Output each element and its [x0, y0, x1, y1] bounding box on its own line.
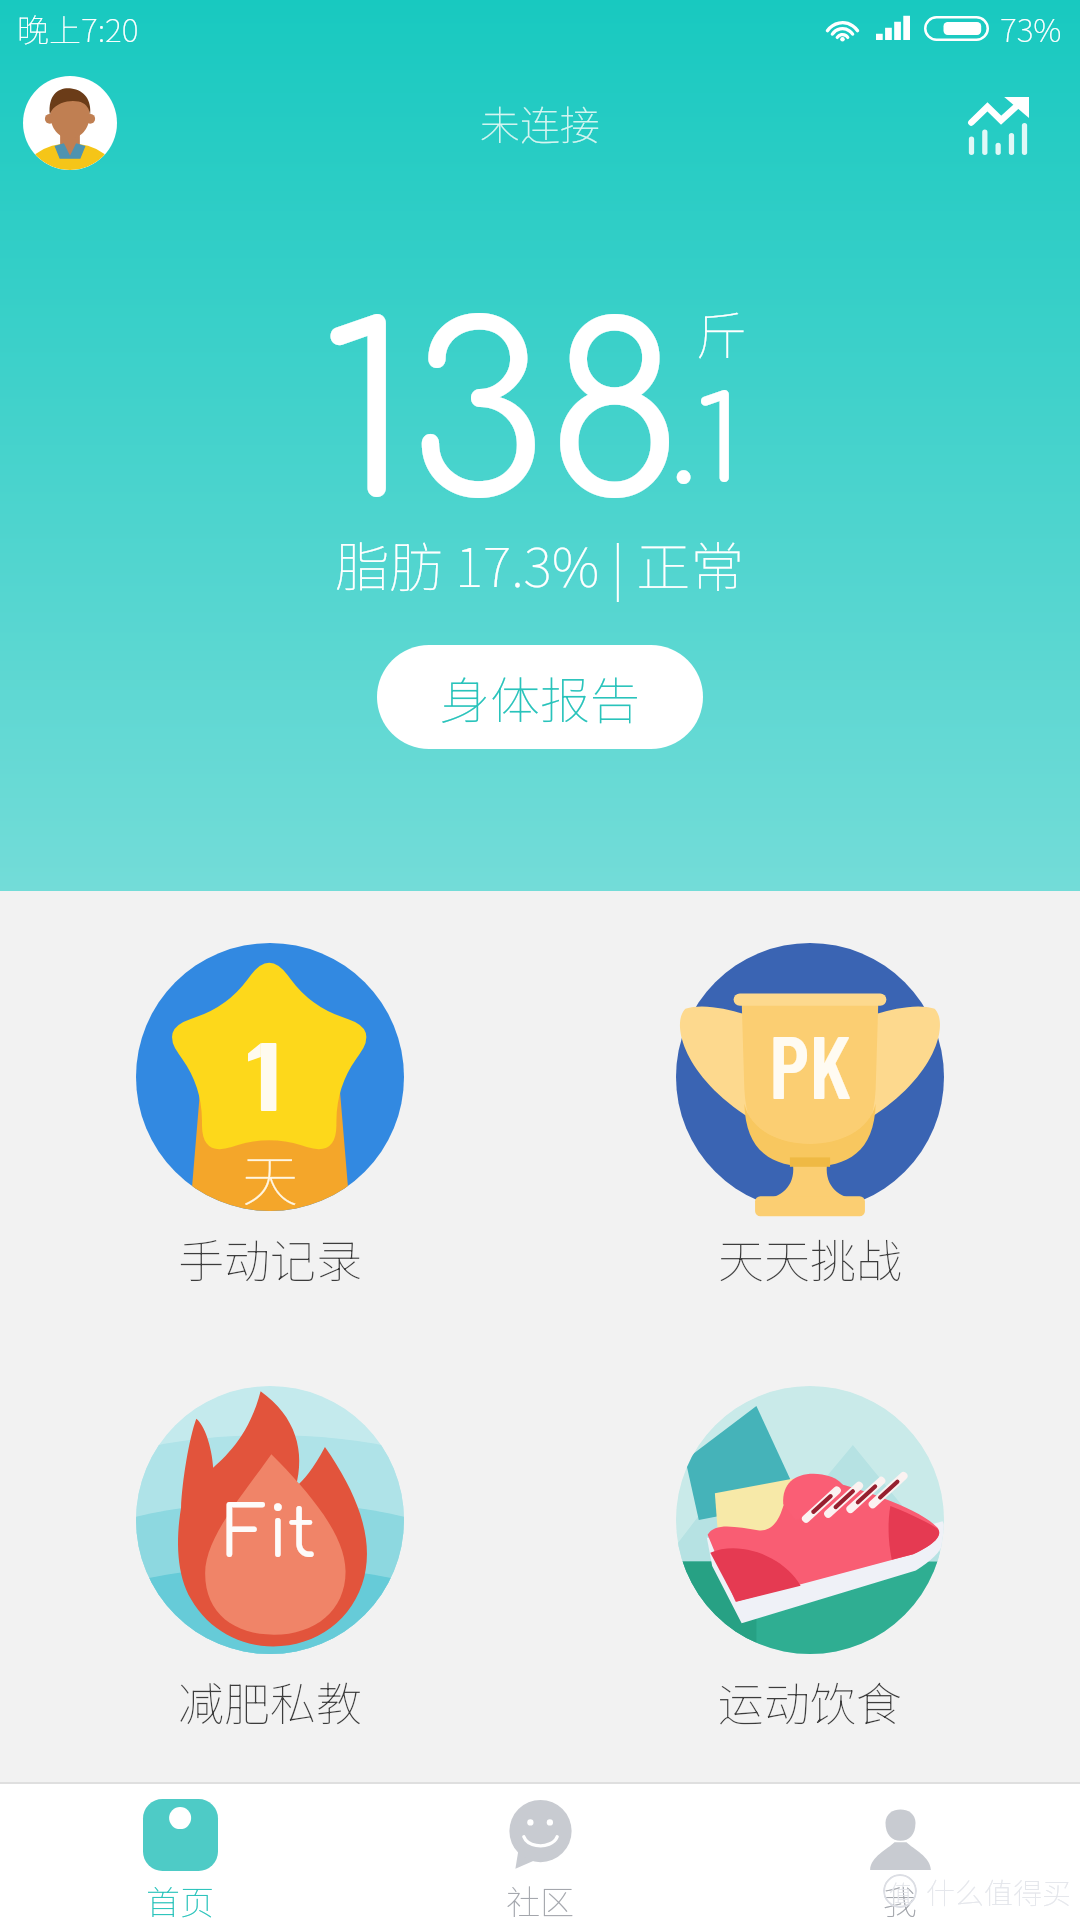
staticText: 手动记录: [178, 1225, 362, 1292]
button[interactable]: PK: [540, 943, 1080, 1292]
staticText: 斤: [695, 295, 748, 370]
button[interactable]: 天: [0, 943, 540, 1292]
button[interactable]: Trends: [950, 78, 1046, 174]
staticText: 减肥私教: [178, 1668, 362, 1735]
button[interactable]: 我: [720, 1784, 1080, 1920]
staticText: PK: [769, 1011, 852, 1117]
staticText: 天: [242, 1136, 298, 1217]
staticText: 未连接: [480, 94, 600, 152]
staticText: 运动饮食: [718, 1668, 902, 1735]
button[interactable]: 身体报告: [377, 645, 703, 749]
staticText: 73%: [1000, 5, 1062, 51]
staticText: 138: [321, 292, 684, 552]
staticText: 天天挑战: [718, 1225, 902, 1292]
staticText: 社区: [506, 1876, 574, 1920]
staticText: 值: [889, 1875, 912, 1908]
button[interactable]: 运动饮食: [540, 1386, 1080, 1735]
staticText: .1: [671, 379, 741, 509]
staticText: 脂肪 17.3% | 正常: [335, 524, 745, 602]
button[interactable]: 首页: [0, 1784, 360, 1920]
button[interactable]: Fit: [0, 1386, 540, 1735]
button[interactable]: 社区: [360, 1784, 720, 1920]
staticText: 什么值得买: [926, 1870, 1072, 1912]
staticText: 我: [883, 1876, 917, 1920]
staticText: 晚上7:20: [17, 5, 139, 51]
button[interactable]: Profile: [23, 76, 117, 170]
staticText: Fit: [224, 1495, 317, 1573]
staticText: 身体报告: [440, 661, 640, 733]
staticText: 首页: [146, 1876, 214, 1920]
